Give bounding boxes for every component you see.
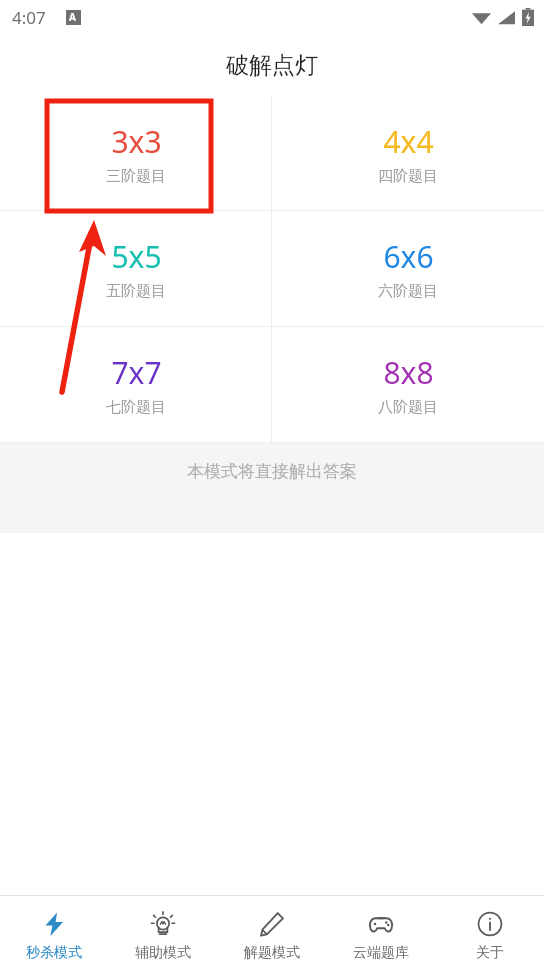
staticText: 三阶题目 <box>106 167 166 186</box>
staticText: A <box>69 10 76 24</box>
staticText: 七阶题目 <box>106 398 166 417</box>
staticText: 四阶题目 <box>378 167 438 186</box>
staticText: 7x7 <box>111 352 162 393</box>
button[interactable]: 7x7 <box>0 327 271 442</box>
staticText: 八阶题目 <box>378 398 438 417</box>
staticText: 破解点灯 <box>226 51 318 80</box>
staticText: 5x5 <box>111 236 162 277</box>
button[interactable]: 秒杀模式 <box>0 896 108 976</box>
button[interactable]: 4x4 <box>272 96 544 210</box>
staticText: 3x3 <box>111 121 162 162</box>
button[interactable]: 3x3 <box>0 96 271 210</box>
staticText: 五阶题目 <box>106 282 166 301</box>
staticText: 6x6 <box>383 236 434 277</box>
staticText: 4x4 <box>383 121 434 162</box>
staticText: 关于 <box>476 944 504 962</box>
staticText: 云端题库 <box>353 944 409 962</box>
staticText: 秒杀模式 <box>26 944 82 962</box>
staticText: 解题模式 <box>244 944 300 962</box>
staticText: 4:07 <box>12 6 46 29</box>
button[interactable]: 辅助模式 <box>108 896 217 976</box>
staticText: 六阶题目 <box>378 282 438 301</box>
button[interactable]: 8x8 <box>272 327 544 442</box>
button[interactable]: 关于 <box>435 896 544 976</box>
button[interactable]: 云端题库 <box>326 896 435 976</box>
staticText: 本模式将直接解出答案 <box>187 461 357 482</box>
staticText: 8x8 <box>383 352 434 393</box>
button[interactable]: 6x6 <box>272 211 544 326</box>
button[interactable]: 解题模式 <box>217 896 326 976</box>
button[interactable]: 5x5 <box>0 211 271 326</box>
staticText: 辅助模式 <box>135 944 191 962</box>
